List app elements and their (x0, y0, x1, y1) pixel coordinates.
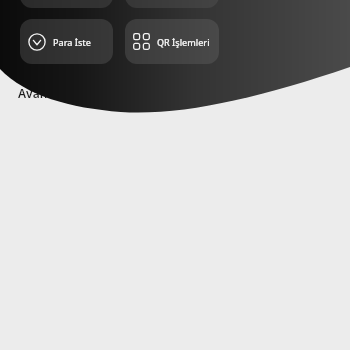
other: Para İste (28, 33, 46, 51)
staticText: Para İste (53, 36, 91, 48)
staticText: QR İşlemleri (157, 36, 210, 48)
button[interactable]: Önceki işlem (20, 0, 113, 8)
staticText: Avantajlarım (18, 85, 94, 101)
button[interactable]: QR İşlemleri (125, 19, 219, 64)
other: QR İşlemleri (133, 33, 150, 50)
button[interactable]: Para İste (20, 19, 113, 64)
button[interactable]: Önceki işlem 2 (125, 0, 219, 8)
button[interactable]: Avantajlarım (18, 85, 109, 101)
